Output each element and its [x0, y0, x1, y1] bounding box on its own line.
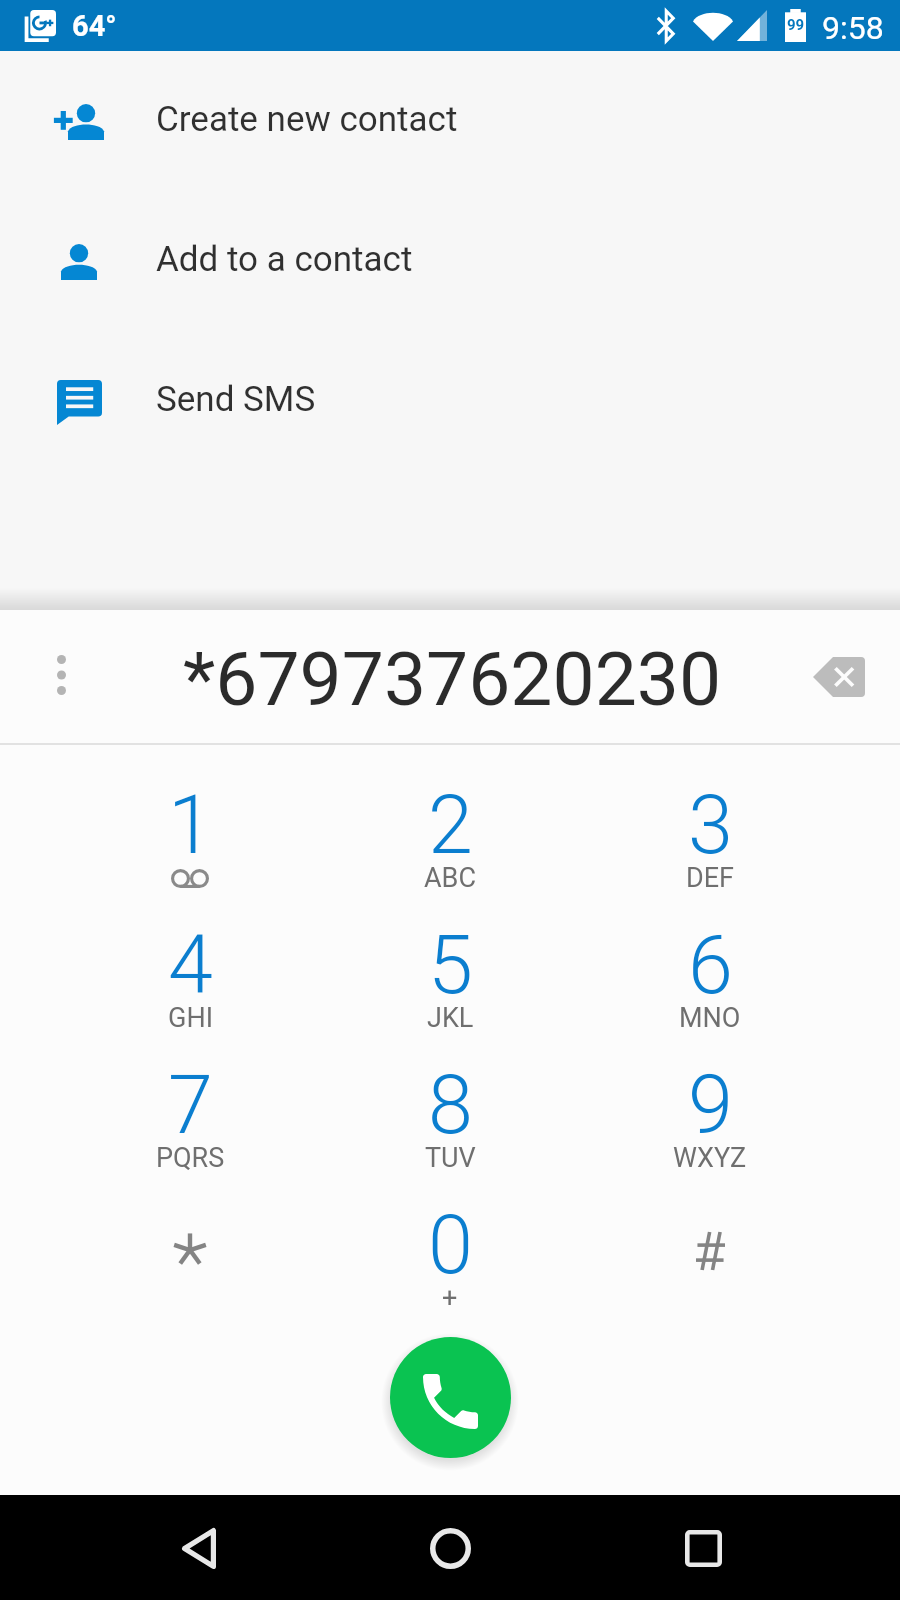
button[interactable]: Add to a contact [0, 192, 900, 332]
staticText: WXYZ [673, 1142, 747, 1174]
button[interactable]: Create new contact [0, 52, 900, 192]
staticText: *679737620230 [183, 635, 722, 723]
staticText: 6 [688, 918, 733, 1013]
button[interactable]: 3 [580, 740, 840, 880]
button[interactable] [60, 1160, 320, 1300]
staticText: 4 [168, 918, 213, 1013]
button[interactable]: Call [390, 1337, 511, 1458]
button[interactable]: 5 [320, 880, 580, 1020]
staticText: JKL [427, 1002, 474, 1034]
staticText: Create new contact [156, 99, 458, 140]
button[interactable]: 8 [320, 1020, 580, 1160]
button[interactable]: 0 [320, 1160, 580, 1300]
staticText: 7 [168, 1058, 213, 1153]
staticText: 1 [168, 778, 213, 873]
staticText: 3 [688, 778, 733, 873]
button[interactable]: Delete [808, 646, 870, 708]
button[interactable]: 2 [320, 740, 580, 880]
staticText: 0 [428, 1198, 473, 1293]
button[interactable]: Home [406, 1504, 494, 1592]
staticText: GHI [168, 1002, 213, 1034]
staticText: 8 [428, 1058, 473, 1153]
staticText: DEF [686, 862, 734, 894]
button[interactable]: Back [154, 1504, 242, 1592]
staticText: 64° [72, 9, 117, 43]
staticText: TUV [425, 1142, 476, 1174]
button[interactable]: More options [39, 653, 83, 697]
staticText: 5 [428, 918, 473, 1013]
button[interactable]: 9 [580, 1020, 840, 1160]
button[interactable] [580, 1160, 840, 1300]
button[interactable]: 4 [60, 880, 320, 1020]
button[interactable]: Send SMS [0, 332, 900, 472]
staticText: 2 [428, 778, 473, 873]
staticText: Add to a contact [156, 239, 413, 280]
staticText: PQRS [156, 1142, 225, 1174]
staticText: + [442, 1282, 458, 1314]
staticText: 99 [787, 16, 805, 34]
button[interactable]: Recents [659, 1504, 747, 1592]
staticText: 9:58 [822, 9, 884, 47]
staticText: Send SMS [156, 379, 316, 420]
button[interactable]: 7 [60, 1020, 320, 1160]
staticText: MNO [679, 1002, 741, 1034]
button[interactable]: 1 [60, 740, 320, 880]
staticText: 9 [688, 1058, 733, 1153]
button[interactable]: 6 [580, 880, 840, 1020]
staticText: ABC [424, 862, 477, 894]
